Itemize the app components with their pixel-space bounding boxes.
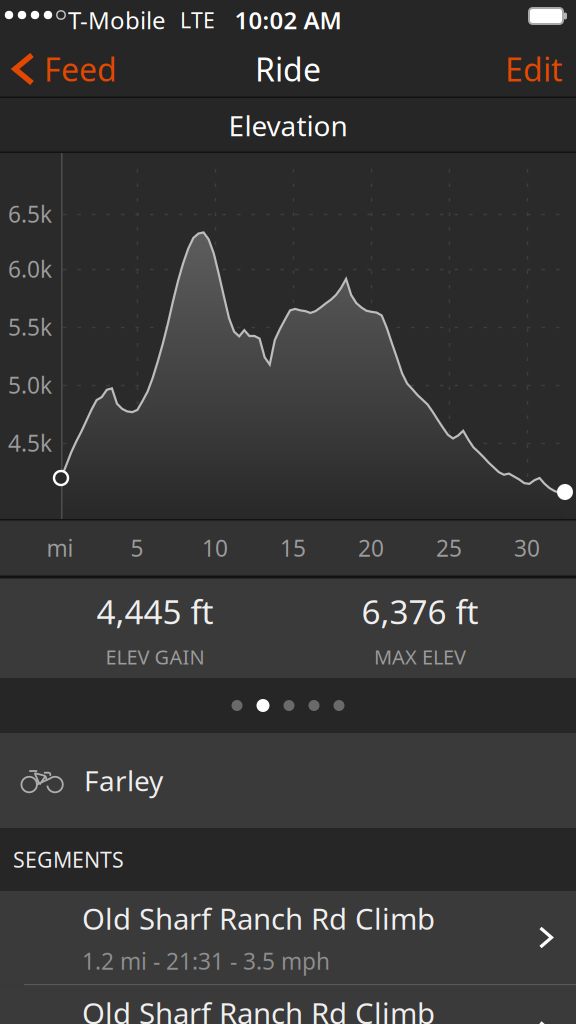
staticText: T-Mobile: [68, 4, 166, 36]
staticText: SEGMENTS: [13, 845, 124, 874]
staticText: Feed: [44, 48, 117, 90]
staticText: Elevation: [228, 107, 347, 144]
staticText: 4.5k: [8, 428, 52, 458]
staticText: 5.5k: [8, 312, 52, 342]
staticText: 10: [202, 533, 228, 563]
staticText: 10:02 AM: [234, 4, 341, 36]
staticText: Old Sharf Ranch Rd Climb: [82, 993, 435, 1024]
staticText: MAX ELEV: [374, 643, 466, 670]
staticText: 25: [436, 533, 462, 563]
staticText: Farley: [84, 762, 163, 799]
staticText: ELEV GAIN: [105, 643, 204, 670]
staticText: Ride: [255, 48, 321, 90]
staticText: 6,376 ft: [361, 589, 478, 633]
staticText: 6.0k: [8, 254, 52, 284]
button[interactable]: Feed: [0, 40, 129, 98]
button[interactable]: Old Sharf Ranch Rd Climb: [0, 985, 576, 1024]
staticText: Edit: [505, 48, 563, 90]
staticText: 6.5k: [8, 199, 52, 229]
staticText: mi: [46, 533, 73, 563]
staticText: LTE: [180, 6, 215, 34]
staticText: 15: [280, 533, 306, 563]
staticText: 20: [358, 533, 384, 563]
staticText: 30: [514, 533, 540, 563]
button[interactable]: Farley: [0, 733, 576, 828]
staticText: 5.0k: [8, 370, 52, 400]
button[interactable]: Edit: [489, 40, 576, 98]
staticText: 4,445 ft: [96, 589, 213, 633]
staticText: 1.2 mi - 21:31 - 3.5 mph: [82, 946, 330, 976]
staticText: 5: [130, 533, 143, 563]
button[interactable]: Old Sharf Ranch Rd Climb: [0, 891, 576, 984]
staticText: Old Sharf Ranch Rd Climb: [82, 899, 435, 938]
